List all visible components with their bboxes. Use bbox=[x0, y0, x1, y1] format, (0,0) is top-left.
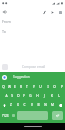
button[interactable]: S bbox=[9, 91, 15, 100]
button[interactable]: Enter bbox=[52, 111, 63, 120]
button[interactable]: T bbox=[24, 82, 30, 91]
staticText: X bbox=[17, 103, 19, 107]
staticText: N bbox=[44, 103, 47, 107]
staticText: T bbox=[26, 85, 28, 89]
staticText: E bbox=[14, 85, 16, 89]
button[interactable]: R bbox=[18, 82, 24, 91]
button[interactable]: F bbox=[21, 91, 27, 100]
button[interactable]: Space bbox=[17, 111, 48, 120]
staticText: U bbox=[39, 85, 42, 89]
button[interactable]: K bbox=[48, 91, 55, 100]
staticText: A bbox=[5, 94, 8, 98]
button[interactable]: I bbox=[44, 82, 51, 91]
staticText: To bbox=[2, 29, 6, 34]
button[interactable]: V bbox=[28, 100, 35, 110]
staticText: L bbox=[58, 94, 60, 98]
staticText: C bbox=[23, 103, 26, 107]
button[interactable]: G bbox=[27, 91, 34, 100]
button[interactable]: More options bbox=[56, 8, 64, 16]
staticText: S bbox=[11, 94, 13, 98]
button[interactable]: Backspace bbox=[56, 100, 65, 110]
staticText: M bbox=[51, 103, 54, 107]
staticText: Q bbox=[2, 85, 5, 89]
staticText: H bbox=[36, 94, 39, 98]
button[interactable]: From bbox=[2, 18, 65, 25]
button[interactable]: Comma bbox=[11, 111, 16, 120]
staticText: J bbox=[44, 94, 45, 98]
staticText: B bbox=[37, 103, 40, 107]
button[interactable]: Symbols bbox=[0, 111, 11, 120]
staticText: I bbox=[47, 85, 49, 89]
button[interactable]: Attach file bbox=[40, 8, 48, 16]
button[interactable]: A bbox=[3, 91, 9, 100]
staticText: Compose email bbox=[22, 65, 46, 69]
button[interactable]: U bbox=[37, 82, 44, 91]
button[interactable]: X bbox=[14, 100, 21, 110]
button[interactable]: To bbox=[2, 28, 65, 35]
staticText: ?123 bbox=[2, 114, 9, 118]
button[interactable]: Formatting options bbox=[2, 64, 8, 70]
staticText: D bbox=[17, 94, 20, 98]
button[interactable]: H bbox=[34, 91, 41, 100]
staticText: P bbox=[61, 85, 63, 89]
button[interactable]: N bbox=[42, 100, 49, 110]
button[interactable]: Z bbox=[8, 100, 14, 110]
button[interactable]: D bbox=[15, 91, 21, 100]
button[interactable]: B bbox=[35, 100, 42, 110]
staticText: V bbox=[31, 103, 33, 107]
staticText: Y bbox=[33, 85, 35, 89]
staticText: G bbox=[29, 94, 32, 98]
staticText: F bbox=[23, 94, 25, 98]
button[interactable]: E bbox=[12, 82, 18, 91]
button[interactable]: M bbox=[49, 100, 56, 110]
staticText: R bbox=[20, 85, 22, 89]
staticText: From bbox=[2, 19, 11, 24]
button[interactable]: Y bbox=[30, 82, 37, 91]
button[interactable]: Send bbox=[48, 8, 56, 16]
button[interactable]: J bbox=[41, 91, 48, 100]
button[interactable]: P bbox=[58, 82, 65, 91]
button[interactable]: L bbox=[55, 91, 62, 100]
staticText: K bbox=[51, 94, 53, 98]
button[interactable]: W bbox=[6, 82, 12, 91]
staticText: Suggestion bbox=[13, 75, 30, 79]
button[interactable]: Back bbox=[1, 8, 8, 15]
button[interactable]: Suggestion bbox=[12, 75, 31, 79]
staticText: W bbox=[8, 85, 11, 89]
button[interactable]: C bbox=[21, 100, 28, 110]
button[interactable]: Shift bbox=[0, 100, 8, 110]
button[interactable]: Q bbox=[0, 82, 6, 91]
button[interactable]: Google bbox=[2, 75, 7, 80]
staticText: O bbox=[53, 85, 56, 89]
staticText: Z bbox=[10, 103, 12, 107]
button[interactable]: O bbox=[51, 82, 58, 91]
